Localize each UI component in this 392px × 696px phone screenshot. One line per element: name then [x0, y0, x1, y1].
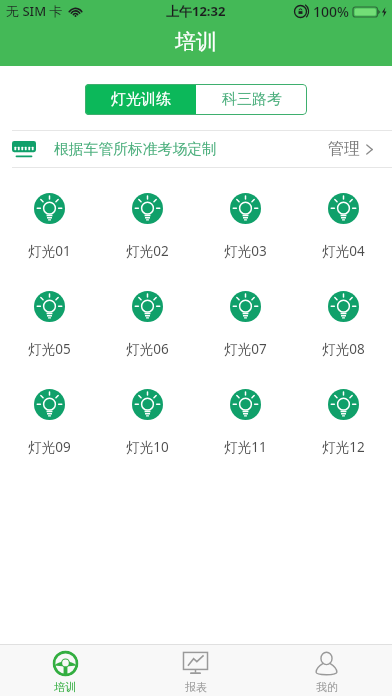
- staticText: 灯光11: [224, 438, 267, 456]
- button[interactable]: 灯光01: [0, 168, 98, 266]
- button[interactable]: 我的: [261, 644, 392, 696]
- staticText: 培训: [54, 680, 76, 694]
- staticText: 培训: [175, 29, 217, 55]
- button[interactable]: 根据车管所标准考场定制: [12, 130, 374, 168]
- button[interactable]: 灯光04: [294, 168, 392, 266]
- staticText: 上午12:32: [166, 2, 226, 20]
- button[interactable]: 灯光07: [196, 266, 294, 364]
- staticText: 我的: [316, 680, 338, 694]
- staticText: 灯光训练: [111, 90, 171, 109]
- button[interactable]: 灯光02: [98, 168, 196, 266]
- staticText: 根据车管所标准考场定制: [54, 140, 217, 159]
- staticText: 灯光04: [322, 242, 365, 260]
- button[interactable]: 报表: [130, 644, 261, 696]
- other: 培训: [52, 650, 79, 677]
- other: 我的: [313, 650, 340, 677]
- staticText: 灯光12: [322, 438, 365, 456]
- staticText: 100%: [313, 2, 349, 21]
- staticText: 科三路考: [222, 90, 282, 109]
- staticText: 无 SIM 卡: [6, 2, 63, 20]
- staticText: 灯光06: [126, 340, 169, 358]
- button[interactable]: 灯光08: [294, 266, 392, 364]
- staticText: 灯光03: [224, 242, 267, 260]
- staticText: 灯光05: [28, 340, 71, 358]
- staticText: 灯光08: [322, 340, 365, 358]
- staticText: 灯光02: [126, 242, 169, 260]
- button[interactable]: 灯光训练: [85, 84, 196, 115]
- staticText: 灯光07: [224, 340, 267, 358]
- staticText: 管理: [328, 139, 360, 159]
- staticText: 灯光10: [126, 438, 169, 456]
- button[interactable]: 灯光09: [0, 364, 98, 462]
- staticText: 灯光01: [28, 242, 71, 260]
- button[interactable]: 科三路考: [196, 84, 307, 115]
- button[interactable]: 灯光05: [0, 266, 98, 364]
- button[interactable]: 灯光11: [196, 364, 294, 462]
- button[interactable]: 灯光06: [98, 266, 196, 364]
- button[interactable]: 灯光12: [294, 364, 392, 462]
- button[interactable]: 培训: [0, 644, 130, 696]
- staticText: 报表: [185, 680, 207, 694]
- button[interactable]: 灯光03: [196, 168, 294, 266]
- other: 报表: [182, 650, 209, 677]
- staticText: 灯光09: [28, 438, 71, 456]
- button[interactable]: 灯光10: [98, 364, 196, 462]
